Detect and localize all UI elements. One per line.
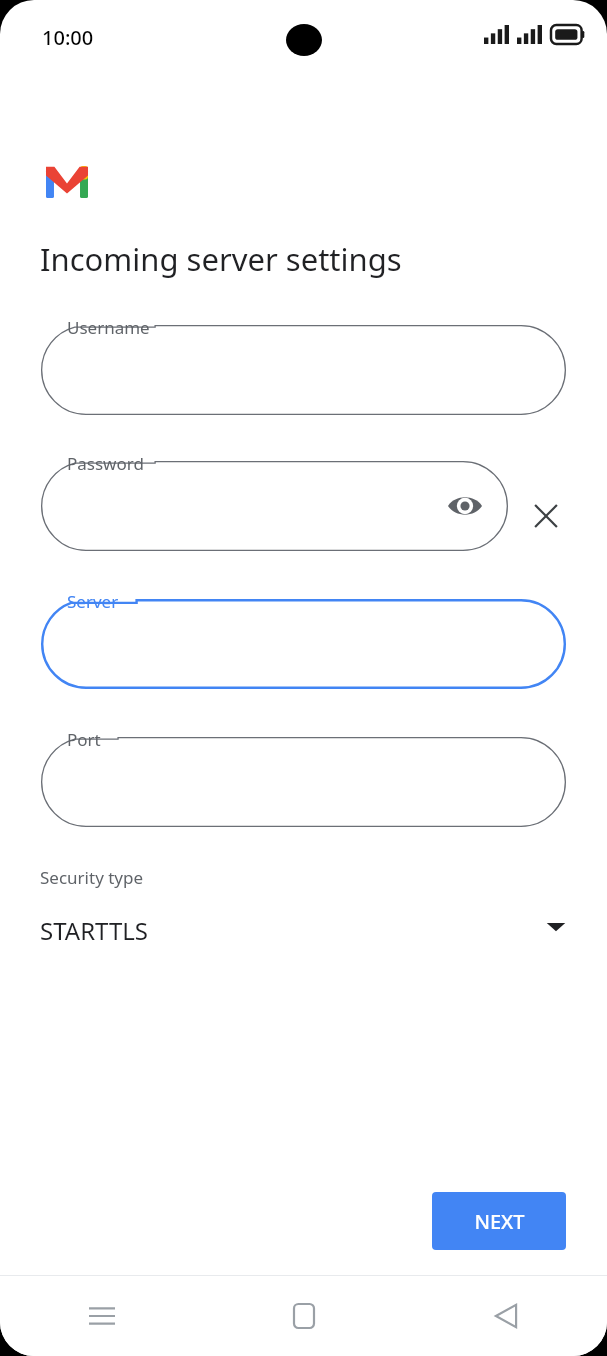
button[interactable]: Username	[41, 325, 566, 415]
button[interactable]: NEXT	[432, 1192, 566, 1250]
button[interactable]: Home	[203, 1276, 405, 1356]
staticText: STARTTLS	[40, 914, 149, 947]
button[interactable]: STARTTLS	[40, 900, 567, 960]
staticText: Username	[67, 316, 150, 339]
button[interactable]: Server	[41, 599, 566, 689]
staticText: Incoming server settings	[40, 238, 402, 280]
staticText: Password	[67, 452, 144, 475]
button[interactable]: Password	[41, 461, 508, 551]
button[interactable]: Back	[405, 1276, 607, 1356]
staticText: Security type	[40, 866, 144, 889]
staticText: Server	[67, 590, 119, 613]
staticText: NEXT	[474, 1208, 525, 1235]
button[interactable]: Recents	[0, 1276, 203, 1356]
button[interactable]: Show password	[442, 483, 488, 529]
staticText: Port	[67, 728, 101, 751]
button[interactable]: Clear	[523, 493, 569, 539]
staticText: 10:00	[42, 24, 94, 51]
button[interactable]: Port	[41, 737, 566, 827]
